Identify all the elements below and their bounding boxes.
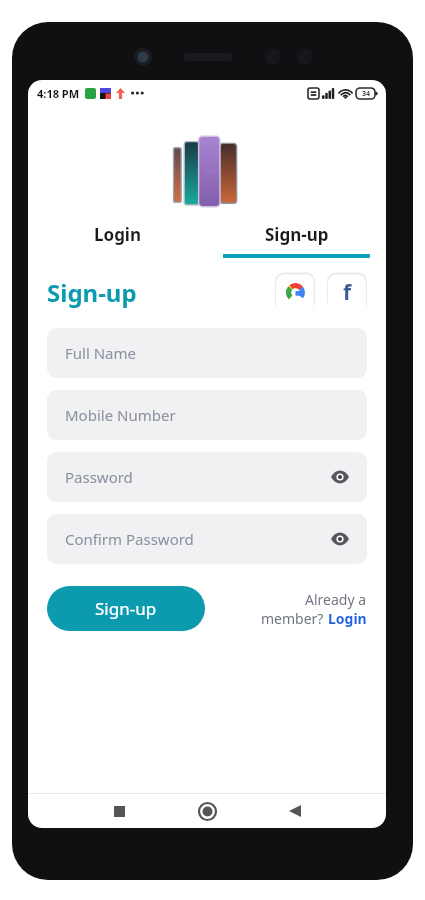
button[interactable]: Password [47, 452, 367, 502]
staticText: Already a [305, 590, 367, 609]
staticText: Sign-up [95, 597, 157, 620]
staticText: Sign-up [47, 276, 137, 309]
button[interactable]: Login [28, 210, 207, 258]
button[interactable]: Already a [261, 590, 367, 628]
staticText: Confirm Password [65, 529, 194, 549]
staticText: 34 [362, 89, 371, 99]
button[interactable]: Sign-up [207, 210, 386, 258]
staticText: Login [94, 223, 142, 246]
other: Show password [331, 471, 349, 483]
button[interactable]: Full Name [47, 328, 367, 378]
other: Show password [331, 533, 349, 545]
staticText: Full Name [65, 343, 136, 363]
staticText: f [343, 278, 352, 307]
button[interactable]: Home [190, 794, 224, 828]
staticText: Password [65, 467, 133, 487]
button[interactable]: Mobile Number [47, 390, 367, 440]
staticText: 4:18 PM [37, 86, 80, 101]
staticText: Login [328, 609, 367, 628]
button[interactable]: Back [278, 794, 312, 828]
staticText: Sign-up [265, 223, 329, 246]
button[interactable]: Sign up with Facebook [327, 272, 367, 312]
staticText: member? [261, 609, 328, 628]
staticText: Mobile Number [65, 405, 176, 425]
button[interactable]: Confirm Password [47, 514, 367, 564]
button[interactable]: Sign-up [47, 586, 205, 631]
button[interactable]: Sign up with Google [275, 272, 315, 312]
button[interactable]: Recent apps [102, 794, 136, 828]
